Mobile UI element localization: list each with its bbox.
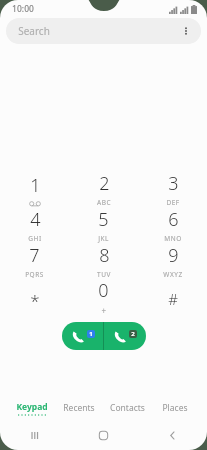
staticText: Contacts [110, 402, 145, 414]
staticText: PQRS [25, 270, 44, 279]
staticText: 4 [30, 207, 41, 232]
button[interactable]: Places [151, 396, 199, 420]
staticText: 1 [89, 330, 93, 338]
button[interactable]: Recents [55, 396, 103, 420]
staticText: 7 [29, 243, 40, 268]
button[interactable]: 6 [138, 208, 207, 244]
staticText: Keypad [16, 401, 48, 413]
staticText: 5 [98, 207, 109, 232]
staticText: JKL [98, 234, 109, 243]
staticText: 0 [98, 278, 109, 303]
staticText: 2 [131, 330, 135, 338]
staticText: + [101, 305, 107, 316]
staticText: DEF [166, 198, 180, 207]
staticText: 8 [99, 243, 110, 268]
staticText: ABC [97, 198, 111, 207]
staticText: # [168, 289, 178, 309]
button[interactable]: Keypad [8, 396, 55, 420]
staticText: 1 [30, 173, 41, 198]
button[interactable]: Search [6, 18, 201, 44]
staticText: 9 [168, 243, 179, 268]
button[interactable]: 7 [0, 244, 69, 280]
button[interactable]: 3 [138, 172, 207, 208]
button[interactable]: # [138, 280, 207, 316]
staticText: * [30, 289, 40, 312]
staticText: 6 [168, 207, 179, 232]
button[interactable]: 9 [138, 244, 207, 280]
button[interactable]: 8 [69, 244, 138, 280]
staticText: Places [162, 402, 188, 414]
button[interactable]: 4 [0, 208, 69, 244]
staticText: TUV [97, 270, 111, 279]
button[interactable]: Back [138, 420, 207, 450]
staticText: WXYZ [163, 270, 183, 279]
button[interactable]: Contacts [103, 396, 151, 420]
button[interactable]: Call with SIM 2 [104, 322, 146, 350]
button[interactable]: Recent apps [0, 420, 69, 450]
button[interactable]: More options [175, 20, 197, 42]
staticText: 10:00 [12, 3, 34, 15]
button[interactable]: Home [69, 420, 138, 450]
staticText: GHI [28, 234, 42, 243]
staticText: Search [18, 24, 50, 38]
button[interactable]: 0 [69, 280, 138, 316]
button[interactable]: 2 [69, 172, 138, 208]
button[interactable]: Call with SIM 1 [62, 322, 103, 350]
staticText: Recents [63, 402, 95, 414]
button[interactable]: 1 [0, 172, 69, 208]
staticText: MNO [164, 234, 182, 243]
staticText: 2 [99, 171, 110, 196]
button[interactable]: 5 [69, 208, 138, 244]
staticText: 3 [168, 171, 179, 196]
button[interactable]: * [0, 280, 69, 316]
